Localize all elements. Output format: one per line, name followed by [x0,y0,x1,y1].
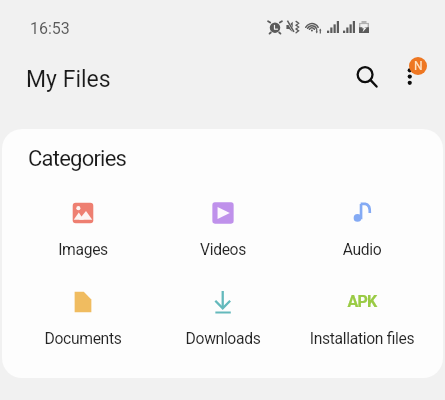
staticText: Images [13,240,153,258]
staticText: 16:53 [30,19,70,38]
button[interactable]: Documents [13,274,153,365]
staticText: Documents [13,329,153,347]
button[interactable]: Downloads [153,274,293,365]
staticText: Audio [292,240,432,258]
button[interactable]: Search [346,56,388,98]
button[interactable]: Audio [292,185,432,276]
button[interactable]: APK [292,274,432,365]
staticText: Videos [153,240,293,258]
staticText: Installation files [292,329,432,347]
staticText: APK [292,292,432,311]
button[interactable]: Images [13,185,153,276]
button[interactable]: More options [389,54,431,96]
staticText: My Files [26,66,111,93]
staticText: Categories [28,146,127,172]
staticText: N [414,59,423,73]
button[interactable]: Videos [153,185,293,276]
staticText: Downloads [153,329,293,347]
